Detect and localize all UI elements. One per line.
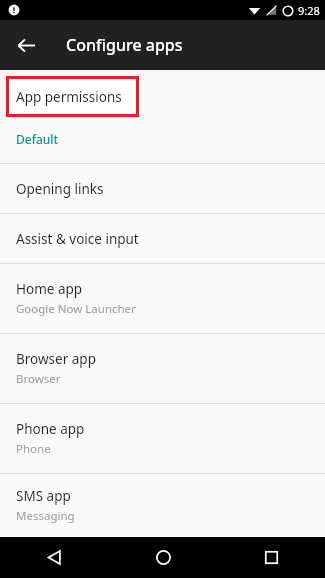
staticText: 9:28	[298, 3, 320, 18]
staticText: Phone app	[16, 420, 85, 438]
button[interactable]: Back	[0, 537, 109, 578]
staticText: Default	[16, 131, 59, 147]
button[interactable]: Phone app	[0, 404, 325, 473]
button[interactable]: App permissions	[0, 70, 325, 125]
button[interactable]: Home	[109, 537, 217, 578]
staticText: Opening links	[16, 180, 104, 198]
staticText: Home app	[16, 280, 83, 298]
button[interactable]: Home app	[0, 264, 325, 333]
button[interactable]: SMS app	[0, 474, 325, 537]
button[interactable]: Opening links	[0, 164, 325, 213]
staticText: Google Now Launcher	[16, 301, 136, 317]
staticText: Phone	[16, 441, 51, 457]
button[interactable]: Assist & voice input	[0, 214, 325, 263]
staticText: Assist & voice input	[16, 230, 139, 248]
button[interactable]: Recent apps	[217, 537, 325, 578]
staticText: Configure apps	[66, 34, 183, 56]
staticText: Messaging	[16, 508, 75, 524]
staticText: App permissions	[16, 88, 122, 106]
staticText: SMS app	[16, 487, 71, 505]
staticText: Browser	[16, 371, 61, 387]
staticText: Browser app	[16, 350, 96, 368]
button[interactable]: Browser app	[0, 334, 325, 403]
button[interactable]: Back	[8, 27, 44, 63]
